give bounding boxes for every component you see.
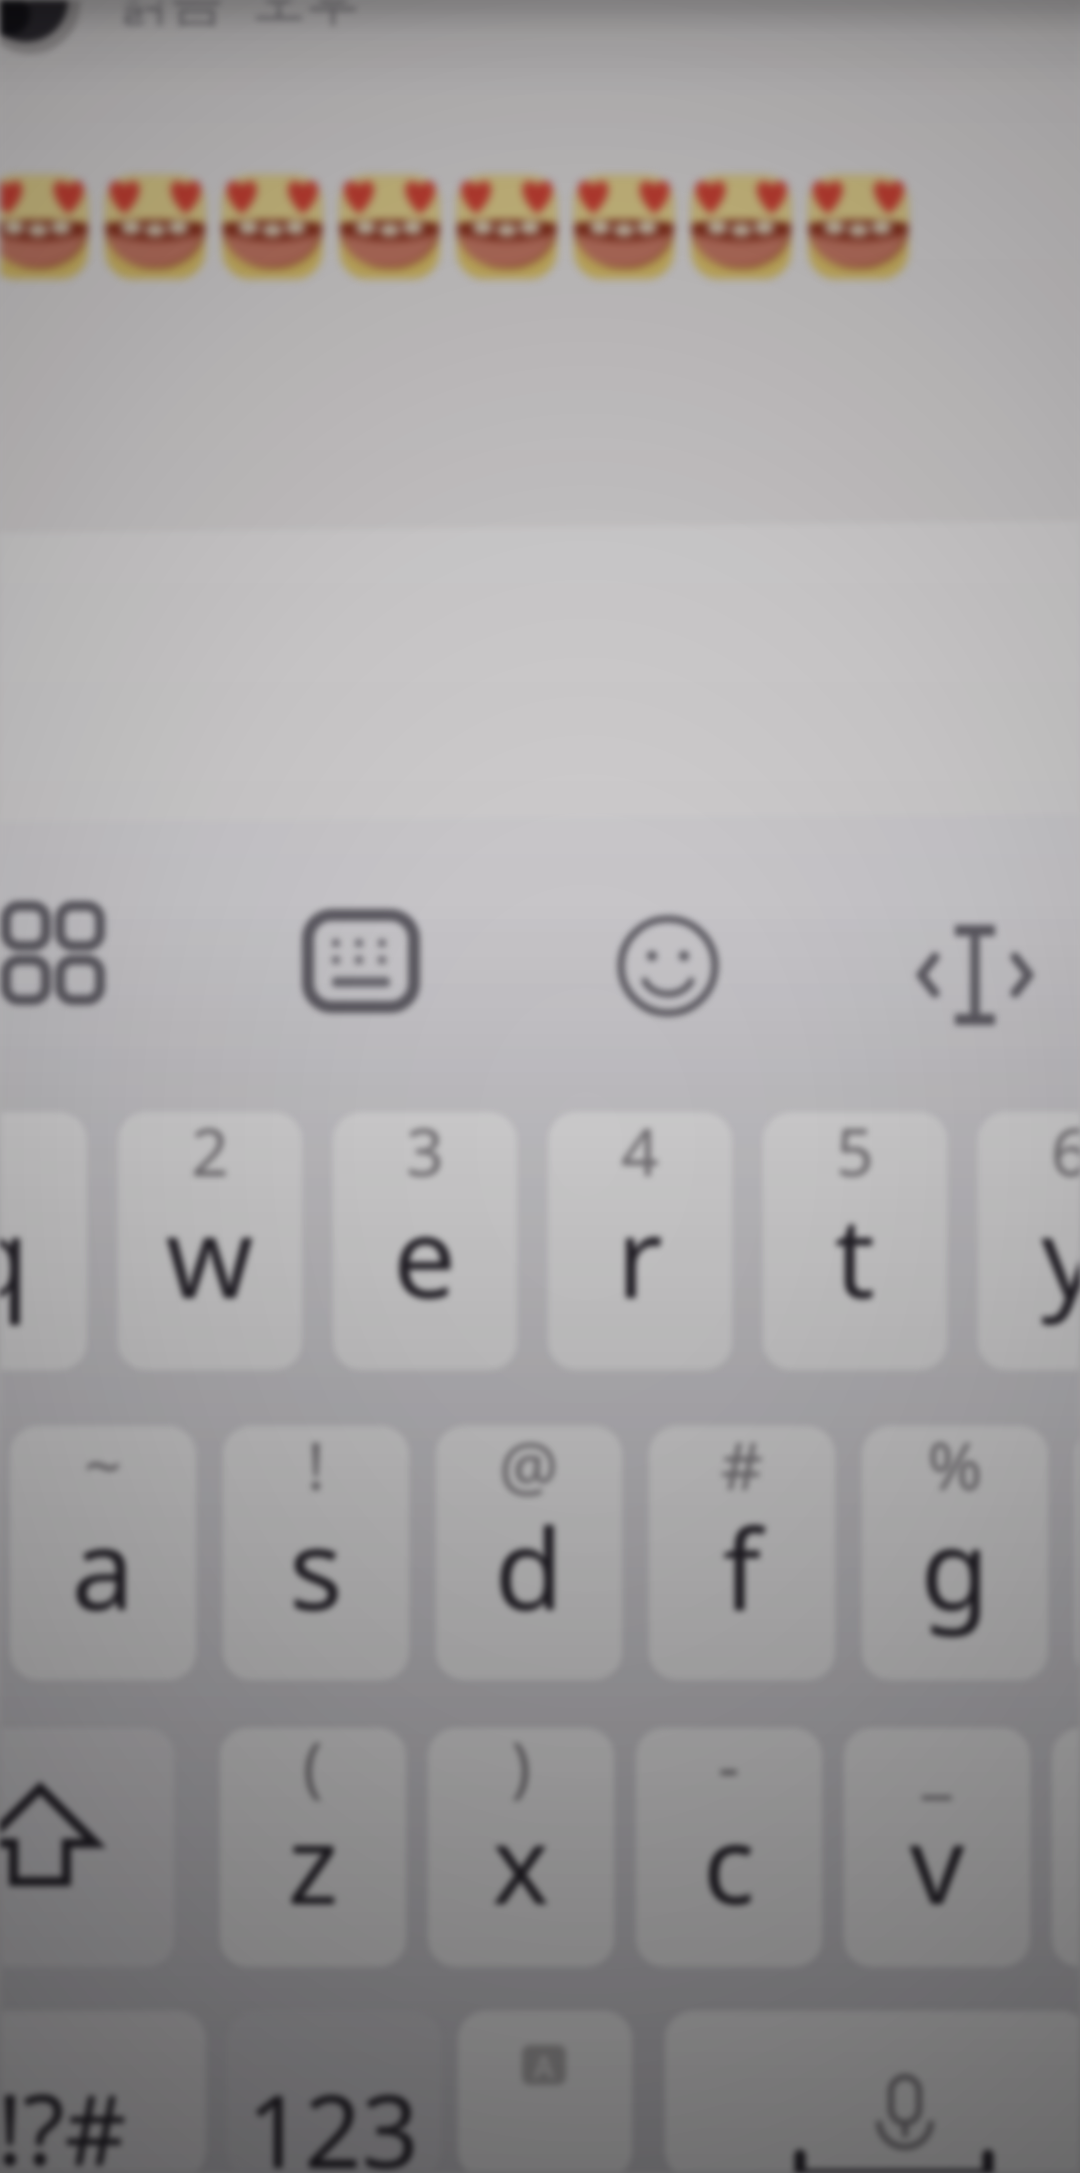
button[interactable]: Comma (458, 2011, 632, 2173)
button[interactable]: s (223, 1426, 409, 1680)
button[interactable]: Numbers (227, 2011, 441, 2173)
button[interactable]: Symbols (0, 2011, 206, 2173)
button[interactable]: v (844, 1728, 1030, 1967)
button[interactable]: e (333, 1112, 517, 1370)
button[interactable]: q (0, 1112, 87, 1370)
button[interactable]: Shift (0, 1728, 174, 1967)
button[interactable]: f (649, 1426, 835, 1680)
button[interactable]: Keyboard layout (270, 878, 450, 1052)
button[interactable]: h (1075, 1426, 1080, 1680)
button[interactable]: c (636, 1728, 822, 1967)
button[interactable]: r (548, 1112, 732, 1370)
button[interactable]: t (763, 1112, 947, 1370)
button[interactable]: a (10, 1426, 196, 1680)
button[interactable]: z (220, 1728, 406, 1967)
button[interactable]: b (1052, 1728, 1080, 1967)
button[interactable]: w (118, 1112, 302, 1370)
button[interactable]: d (436, 1426, 622, 1680)
button[interactable]: Space (665, 2011, 1080, 2173)
button[interactable]: g (862, 1426, 1048, 1680)
button[interactable]: Emoji (590, 878, 750, 1052)
button[interactable]: y (978, 1112, 1080, 1370)
button[interactable]: x (428, 1728, 614, 1967)
button[interactable]: Move cursor (890, 878, 1080, 1052)
button[interactable]: Apps (0, 878, 150, 1052)
